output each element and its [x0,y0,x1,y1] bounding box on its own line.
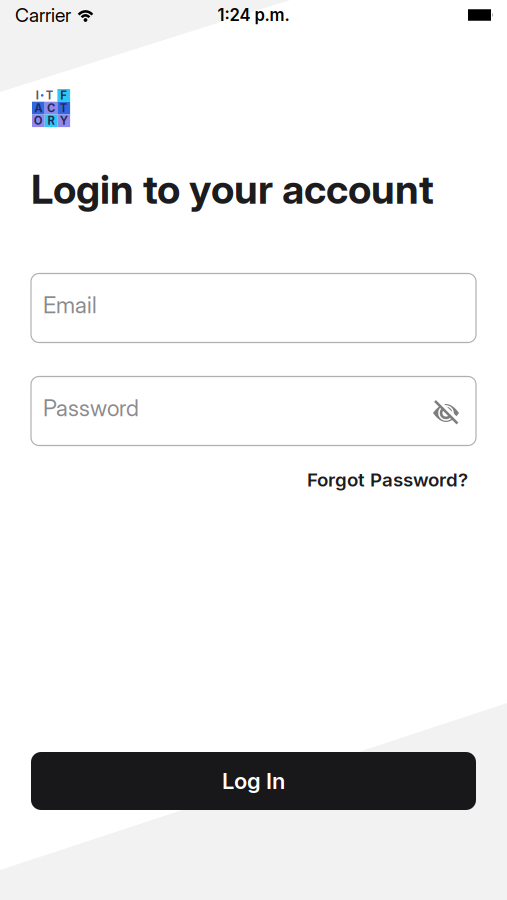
button[interactable]: Log In [31,752,476,810]
staticText: O [34,114,43,128]
staticText: Carrier [15,3,71,27]
button[interactable]: Show password [432,400,460,426]
staticText: F [60,88,67,102]
staticText: Y [60,114,68,128]
staticText: T [60,101,68,115]
staticText: Log In [222,768,285,794]
staticText: I [36,88,39,102]
staticText: Forgot Password? [307,468,468,491]
staticText: C [47,101,55,115]
staticText: Login to your account [31,165,434,213]
staticText: A [34,101,42,115]
button[interactable]: Forgot Password? [307,468,468,491]
staticText: R [48,114,55,128]
staticText: T [46,88,54,102]
staticText: Email [43,291,97,319]
staticText: Password [43,394,139,422]
staticText: 1:24 p.m. [217,5,289,25]
